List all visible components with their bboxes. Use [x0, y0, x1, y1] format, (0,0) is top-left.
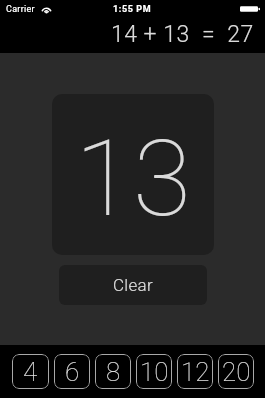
button[interactable]: 10 [136, 354, 172, 389]
button[interactable]: 8 [95, 354, 131, 389]
staticText: Clear [113, 275, 153, 295]
other: Battery full [240, 5, 260, 13]
staticText: 1:55 PM [113, 4, 152, 15]
staticText: 20 [222, 357, 251, 387]
staticText: 14 + 13 = 27 [111, 21, 254, 48]
staticText: 10 [140, 357, 169, 387]
staticText: 12 [181, 357, 210, 387]
staticText: 8 [106, 357, 121, 387]
staticText: 13 [75, 117, 192, 241]
staticText: Carrier [6, 4, 35, 15]
button[interactable]: 13 [52, 94, 214, 255]
button[interactable]: 6 [54, 354, 90, 389]
staticText: 4 [23, 357, 38, 387]
button[interactable]: 12 [177, 354, 213, 389]
other: Wi-Fi signal [41, 6, 52, 13]
staticText: 6 [65, 357, 80, 387]
button[interactable]: 20 [218, 354, 254, 389]
button[interactable]: 4 [12, 354, 49, 389]
button[interactable]: Clear [59, 265, 207, 305]
